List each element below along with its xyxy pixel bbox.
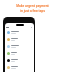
button[interactable] <box>5 64 34 71</box>
button[interactable] <box>5 43 34 50</box>
button[interactable] <box>5 29 34 36</box>
staticText: Make urgent payment <box>16 4 49 8</box>
button[interactable] <box>5 50 34 57</box>
button[interactable] <box>5 36 34 43</box>
button[interactable] <box>5 57 34 64</box>
staticText: in just a few taps <box>20 9 45 13</box>
button[interactable]: Payments <box>6 27 9 28</box>
